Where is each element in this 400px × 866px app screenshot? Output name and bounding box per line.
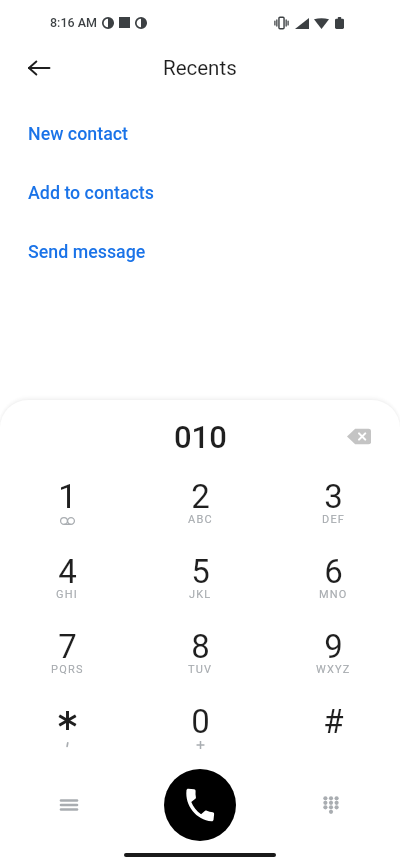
- button[interactable]: Backspace: [338, 415, 380, 457]
- button[interactable]: [0, 691, 134, 766]
- staticText: 3: [324, 477, 343, 516]
- button[interactable]: Call: [164, 769, 236, 841]
- staticText: 0: [191, 702, 210, 741]
- staticText: 8:16 AM: [50, 15, 98, 30]
- staticText: 5: [191, 552, 210, 591]
- staticText: DEF: [322, 513, 346, 526]
- staticText: Recents: [163, 56, 237, 80]
- staticText: ABC: [188, 513, 213, 526]
- staticText: 8: [191, 627, 210, 666]
- staticText: TUV: [188, 663, 213, 676]
- staticText: 9: [324, 627, 343, 666]
- button[interactable]: #: [267, 691, 400, 766]
- staticText: WXYZ: [316, 663, 351, 676]
- staticText: GHI: [56, 588, 78, 601]
- staticText: 6: [324, 552, 343, 591]
- button[interactable]: 3: [267, 466, 400, 541]
- staticText: Add to contacts: [28, 182, 154, 203]
- staticText: MNO: [319, 588, 348, 601]
- button[interactable]: 1: [0, 466, 134, 541]
- button[interactable]: 0: [134, 691, 267, 766]
- button[interactable]: 6: [267, 541, 400, 616]
- staticText: 1: [58, 477, 77, 516]
- button[interactable]: 4: [0, 541, 134, 616]
- staticText: New contact: [28, 123, 129, 144]
- button[interactable]: 9: [267, 616, 400, 691]
- button[interactable]: 2: [134, 466, 267, 541]
- button[interactable]: 7: [0, 616, 134, 691]
- staticText: 4: [58, 552, 77, 591]
- button[interactable]: Add to contacts: [0, 169, 400, 215]
- staticText: #: [323, 702, 344, 741]
- staticText: 010: [174, 419, 227, 455]
- button[interactable]: Back: [17, 46, 61, 90]
- staticText: 7: [58, 627, 77, 666]
- button[interactable]: New contact: [0, 110, 400, 156]
- button[interactable]: Send message: [0, 228, 400, 274]
- button[interactable]: More options: [47, 783, 91, 827]
- staticText: PQRS: [51, 663, 84, 676]
- staticText: Send message: [28, 241, 146, 262]
- button[interactable]: Keypad: [309, 783, 353, 827]
- staticText: 2: [191, 477, 210, 516]
- button[interactable]: 8: [134, 616, 267, 691]
- staticText: JKL: [189, 588, 212, 601]
- button[interactable]: 5: [134, 541, 267, 616]
